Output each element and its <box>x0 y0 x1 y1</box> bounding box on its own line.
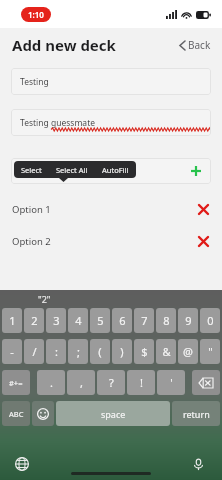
staticText: Testing <box>20 76 49 88</box>
staticText: 1:10 <box>28 9 44 20</box>
button[interactable]: Options 2 <box>11 158 211 184</box>
staticText: Select All <box>56 165 88 175</box>
button[interactable]: 1 <box>2 308 22 333</box>
staticText: $ <box>141 344 148 359</box>
staticText: ; <box>77 344 80 359</box>
button[interactable]: ? <box>97 370 125 395</box>
staticText: ' <box>170 375 173 390</box>
button[interactable]: ( <box>90 339 110 364</box>
staticText: 6 <box>119 313 126 328</box>
button[interactable]: 0 <box>200 308 220 333</box>
button[interactable]: Backspace <box>192 370 220 395</box>
staticText: Select <box>21 165 42 175</box>
staticText: #+= <box>9 378 23 388</box>
staticText: Option 2 <box>12 235 51 248</box>
button[interactable]: ABC <box>2 401 30 426</box>
button[interactable]: 9 <box>178 308 198 333</box>
staticText: 0 <box>207 313 214 328</box>
button[interactable]: 5 <box>90 308 110 333</box>
staticText: 3 <box>53 313 60 328</box>
staticText: space <box>101 408 126 420</box>
staticText: " <box>208 344 213 359</box>
staticText: , <box>80 375 83 390</box>
staticText: & <box>162 344 171 359</box>
staticText: 1 <box>9 313 16 328</box>
staticText: Add new deck <box>12 35 116 55</box>
button[interactable]: 8 <box>156 308 176 333</box>
button[interactable]: ; <box>68 339 88 364</box>
button[interactable]: space <box>56 401 170 426</box>
button[interactable]: Add option <box>188 163 204 179</box>
staticText: guessmate <box>51 117 95 129</box>
button[interactable]: AutoFill <box>95 162 136 178</box>
button[interactable]: #+= <box>2 370 30 395</box>
button[interactable]: Testing <box>11 68 211 95</box>
button[interactable]: " <box>200 339 220 364</box>
staticText: . <box>50 375 53 390</box>
staticText: 7 <box>141 313 148 328</box>
button[interactable]: "2" <box>38 293 51 305</box>
staticText: ? <box>109 375 114 390</box>
button[interactable]: Remove Option 1 <box>196 202 210 216</box>
staticText: : <box>55 344 58 359</box>
button[interactable]: & <box>156 339 176 364</box>
staticText: Options 2 <box>20 165 59 177</box>
button[interactable]: Emoji <box>32 401 54 426</box>
button[interactable]: 3 <box>46 308 66 333</box>
button[interactable]: ! <box>127 370 155 395</box>
staticText: 9 <box>185 313 192 328</box>
staticText: Option 1 <box>12 203 51 216</box>
button[interactable]: $ <box>134 339 154 364</box>
staticText: ( <box>98 344 102 359</box>
button[interactable]: , <box>67 370 95 395</box>
button[interactable]: Select <box>14 162 49 178</box>
staticText: ) <box>120 344 124 359</box>
staticText: 2 <box>31 313 38 328</box>
button[interactable]: : <box>46 339 66 364</box>
button[interactable]: ) <box>112 339 132 364</box>
button[interactable]: Option 1 <box>0 200 222 218</box>
staticText: / <box>32 344 37 359</box>
staticText: return <box>183 408 210 420</box>
button[interactable]: Voice input <box>188 454 208 474</box>
button[interactable]: - <box>2 339 22 364</box>
staticText: 5 <box>97 313 104 328</box>
staticText: - <box>10 344 14 359</box>
staticText: Back <box>188 38 211 52</box>
button[interactable]: / <box>24 339 44 364</box>
button[interactable]: Back <box>172 34 222 56</box>
staticText: AutoFill <box>102 165 129 175</box>
button[interactable]: 4 <box>68 308 88 333</box>
staticText: ! <box>140 375 143 390</box>
button[interactable]: return <box>172 401 220 426</box>
button[interactable]: ' <box>157 370 185 395</box>
button[interactable]: Option 2 <box>0 232 222 250</box>
staticText: ABC <box>9 409 24 419</box>
staticText: 8 <box>163 313 170 328</box>
button[interactable]: 7 <box>134 308 154 333</box>
button[interactable]: Testing <box>11 109 211 136</box>
button[interactable]: . <box>37 370 65 395</box>
staticText: 4 <box>75 313 82 328</box>
button[interactable]: Change keyboard language <box>12 454 32 474</box>
button[interactable]: Remove Option 2 <box>196 234 210 248</box>
button[interactable]: 6 <box>112 308 132 333</box>
staticText: @ <box>183 344 193 359</box>
button[interactable]: @ <box>178 339 198 364</box>
button[interactable]: Select All <box>49 162 95 178</box>
staticText: Testing <box>20 117 51 129</box>
button[interactable]: 2 <box>24 308 44 333</box>
